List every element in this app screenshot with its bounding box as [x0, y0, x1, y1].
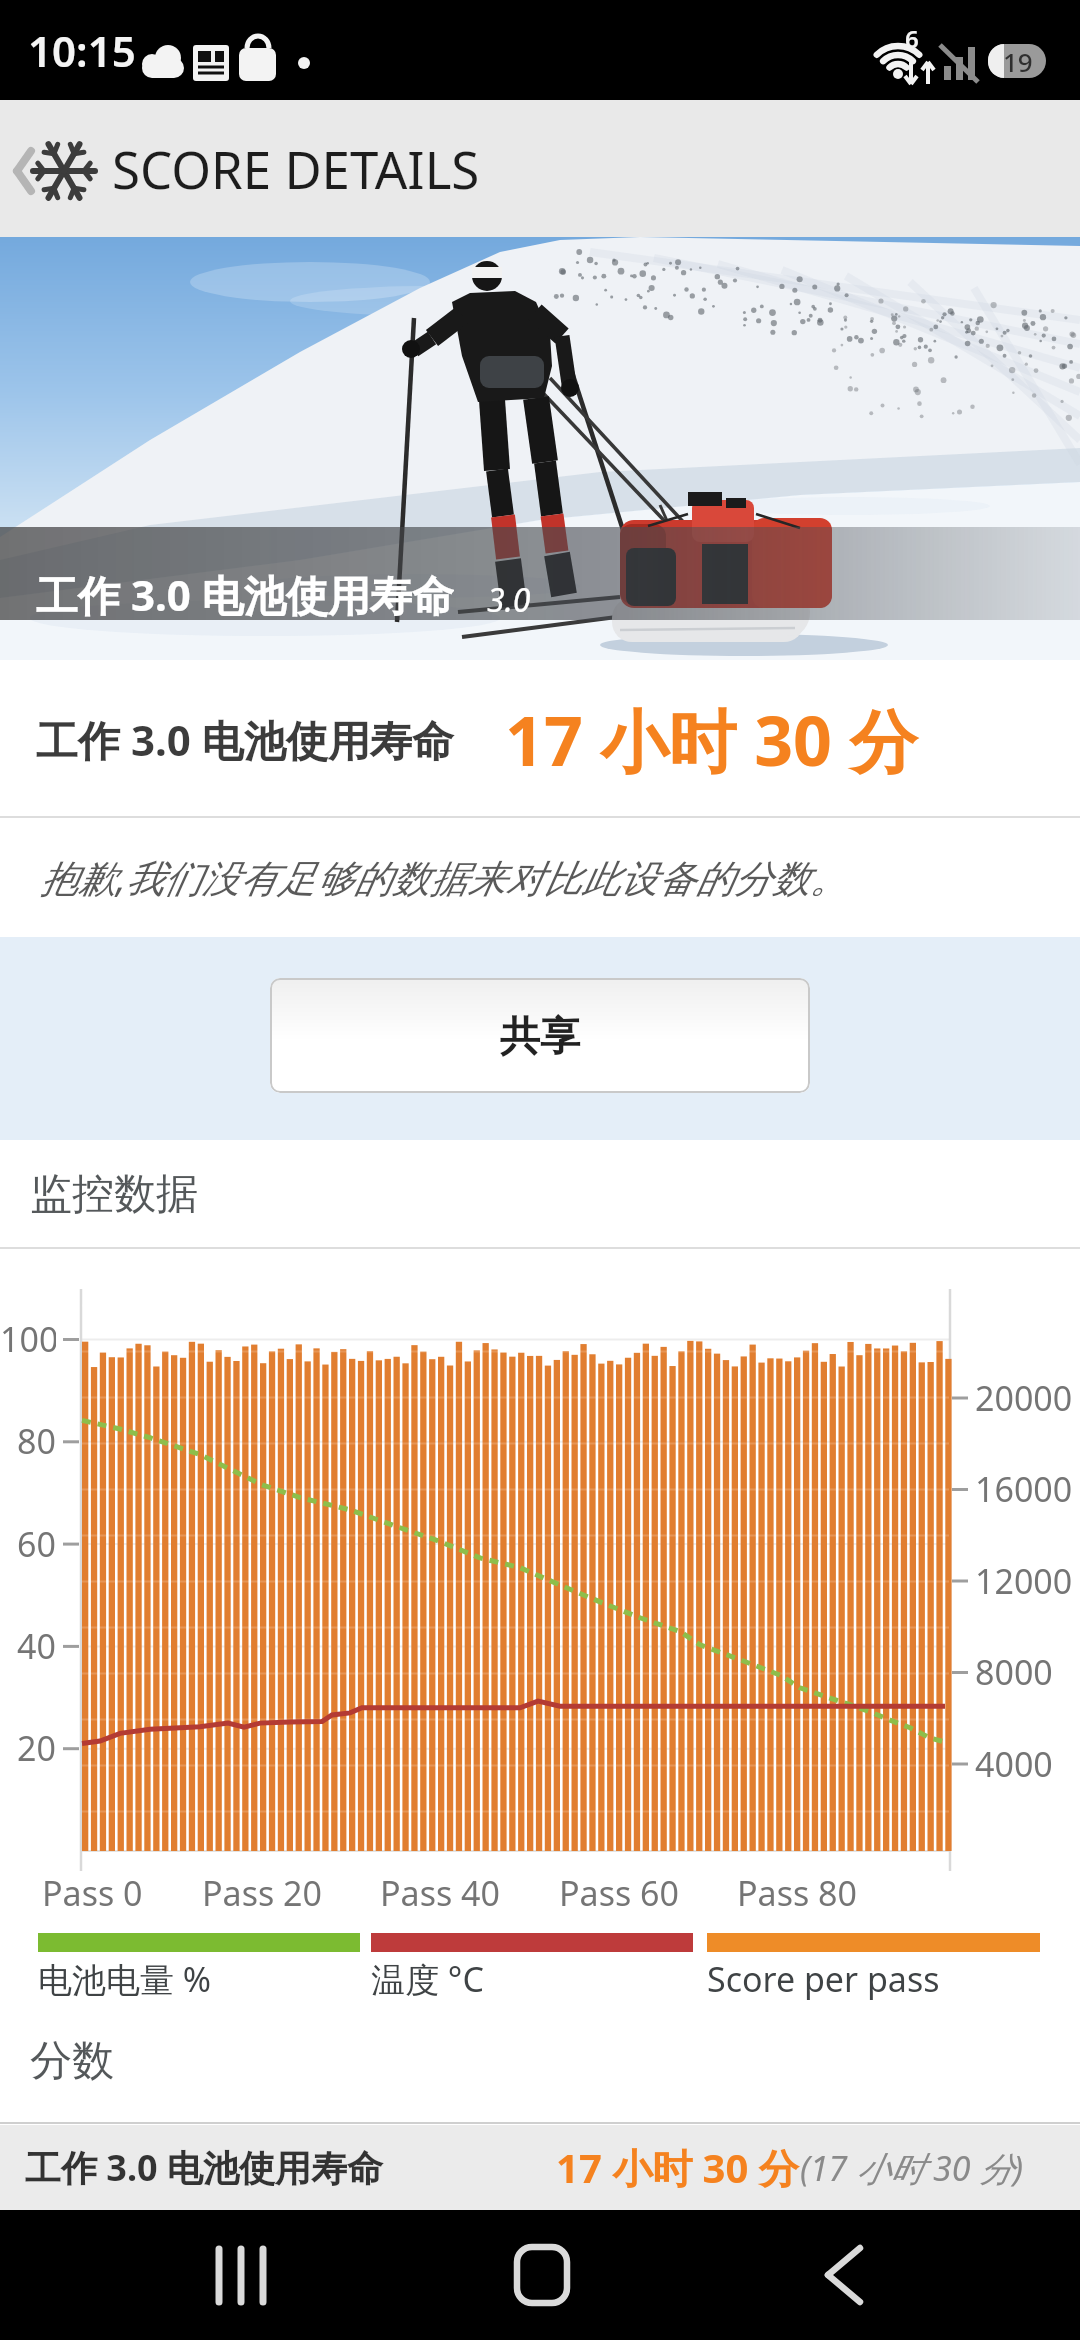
staticText: 100	[0, 1316, 56, 1362]
staticText: 16000	[975, 1466, 1073, 1512]
staticText: Score per pass	[707, 1956, 940, 2000]
staticText: 抱歉,我们没有足够的数据来对比此设备的分数。	[40, 851, 848, 903]
staticText: 8000	[975, 1649, 1053, 1695]
staticText: SCORE DETAILS	[112, 134, 480, 203]
staticText: 40	[17, 1623, 56, 1669]
staticText: 3.0	[487, 578, 531, 622]
staticText: Pass 40	[380, 1870, 500, 1916]
staticText: 20	[17, 1725, 56, 1771]
staticText: 4000	[975, 1741, 1053, 1787]
button[interactable]	[165, 2225, 315, 2330]
button[interactable]	[770, 2225, 920, 2330]
staticText: 60	[17, 1521, 56, 1567]
staticText: Pass 80	[737, 1870, 857, 1916]
staticText: Pass 0	[42, 1870, 143, 1916]
staticText: 19	[1003, 44, 1033, 78]
button[interactable]: 共享	[270, 978, 810, 1093]
button[interactable]	[0, 100, 110, 237]
staticText: 共享	[500, 1011, 580, 1061]
staticText: 17 小时 30 分	[505, 693, 918, 786]
staticText: 工作 3.0 电池使用寿命	[36, 566, 454, 622]
staticText: 工作 3.0 电池使用寿命	[36, 711, 454, 768]
staticText: 工作 3.0 电池使用寿命	[25, 2143, 384, 2192]
staticText: 6	[905, 22, 919, 52]
button[interactable]	[0, 2125, 1080, 2210]
staticText: 12000	[975, 1558, 1073, 1604]
staticText: 80	[17, 1418, 56, 1464]
staticText: 温度 °C	[371, 1956, 484, 2000]
staticText: 10:15	[28, 22, 136, 79]
staticText: Pass 60	[559, 1870, 679, 1916]
staticText: 电池电量 %	[38, 1956, 212, 2000]
button[interactable]	[465, 2225, 615, 2330]
staticText: 20000	[975, 1375, 1073, 1421]
staticText: (17 小时 30 分)	[800, 2145, 1024, 2191]
staticText: Pass 20	[202, 1870, 322, 1916]
staticText: 监控数据	[30, 1168, 198, 1221]
staticText: 分数	[30, 2035, 114, 2088]
staticText: 17 小时 30 分	[556, 2140, 799, 2195]
